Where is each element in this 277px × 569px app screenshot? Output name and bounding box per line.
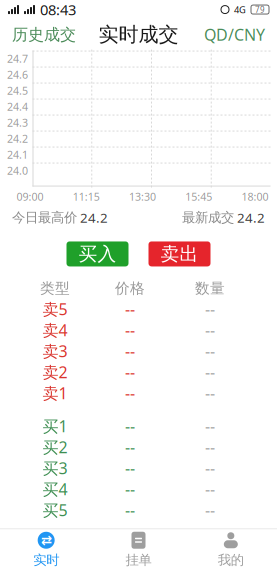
staticText: 24.2 [234,209,265,226]
staticText: 24.2 [77,209,108,226]
staticText: 24.4 [7,99,28,114]
button[interactable]: 历史成交 [4,19,84,50]
staticText: -- [125,340,135,361]
button[interactable]: QD/CNY [196,18,273,51]
staticText: 15:45 [185,190,212,204]
button[interactable]: ⇄ [0,526,92,569]
staticText: 79 [255,4,265,15]
staticText: -- [205,457,215,478]
staticText: 24.5 [7,83,28,98]
staticText: ⇄ [41,533,52,548]
staticText: 13:30 [129,190,156,204]
staticText: -- [205,415,215,436]
staticText: 24.0 [7,163,28,178]
staticText: 24.2 [7,131,28,146]
staticText: -- [205,436,215,457]
staticText: 我的 [218,552,244,568]
button[interactable]: 买入 [66,241,128,266]
staticText: 数量 [195,279,225,297]
staticText: -- [125,319,135,340]
staticText: 卖4 [42,319,67,340]
staticText: QD/CNY [204,24,265,45]
staticText: 24.7 [7,51,28,66]
staticText: -- [125,298,135,319]
staticText: -- [205,361,215,382]
staticText: -- [205,478,215,499]
staticText: -- [205,382,215,403]
staticText: -- [205,298,215,319]
staticText: 卖5 [42,298,67,319]
staticText: 卖1 [42,382,67,403]
staticText: 今日最高价 [12,209,77,226]
staticText: 实时成交 [98,22,178,47]
button[interactable]: 挂单 [92,526,185,569]
staticText: 买1 [42,415,67,436]
staticText: 买5 [42,499,67,520]
button[interactable]: 我的 [185,526,277,569]
staticText: 买4 [42,478,67,499]
staticText: -- [125,499,135,520]
staticText: 卖2 [42,361,67,382]
staticText: 09:00 [16,190,43,204]
staticText: 11:15 [73,190,100,204]
staticText: 历史成交 [12,25,76,44]
staticText: -- [125,382,135,403]
staticText: 买入 [78,242,116,265]
staticText: 挂单 [125,552,151,568]
staticText: 卖3 [42,340,67,361]
staticText: -- [125,478,135,499]
staticText: -- [125,361,135,382]
staticText: 24.1 [7,147,28,162]
staticText: 24.6 [7,67,28,82]
staticText: 卖出 [160,242,198,265]
staticText: 最新成交 [182,209,234,226]
staticText: -- [125,415,135,436]
button[interactable]: 卖出 [148,241,210,266]
staticText: -- [205,319,215,340]
staticText: 18:00 [241,190,268,204]
staticText: 类型 [40,279,70,297]
staticText: 买3 [42,457,67,478]
staticText: 24.3 [7,115,28,130]
staticText: 买2 [42,436,67,457]
staticText: 价格 [115,279,145,297]
staticText: 4G [234,3,246,16]
staticText: -- [205,340,215,361]
staticText: -- [125,457,135,478]
staticText: -- [205,499,215,520]
staticText: 实时 [33,552,59,568]
staticText: 08:43 [40,0,76,19]
staticText: -- [125,436,135,457]
